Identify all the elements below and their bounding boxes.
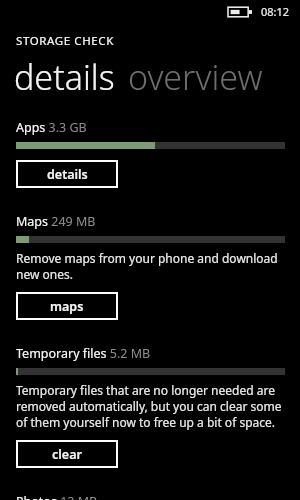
- button[interactable]: details: [16, 160, 118, 188]
- button[interactable]: overview: [128, 54, 263, 100]
- staticText: details: [14, 54, 115, 100]
- staticText: Maps 249 MB: [16, 213, 96, 230]
- staticText: maps: [50, 298, 84, 315]
- button[interactable]: maps: [16, 292, 118, 320]
- button[interactable]: clear: [16, 440, 118, 468]
- staticText: STORAGE CHECK: [16, 33, 114, 49]
- staticText: Remove maps from your phone and download…: [16, 250, 285, 282]
- staticText: Temporary files that are no longer neede…: [16, 382, 285, 430]
- staticText: details: [47, 166, 88, 183]
- staticText: Temporary files 5.2 MB: [16, 345, 151, 362]
- staticText: overview: [128, 54, 263, 100]
- staticText: Photos 12 MB: [16, 493, 98, 500]
- staticText: Apps 3.3 GB: [16, 119, 87, 136]
- button[interactable]: details: [14, 54, 115, 100]
- staticText: 08:12: [261, 4, 290, 19]
- staticText: clear: [52, 446, 82, 463]
